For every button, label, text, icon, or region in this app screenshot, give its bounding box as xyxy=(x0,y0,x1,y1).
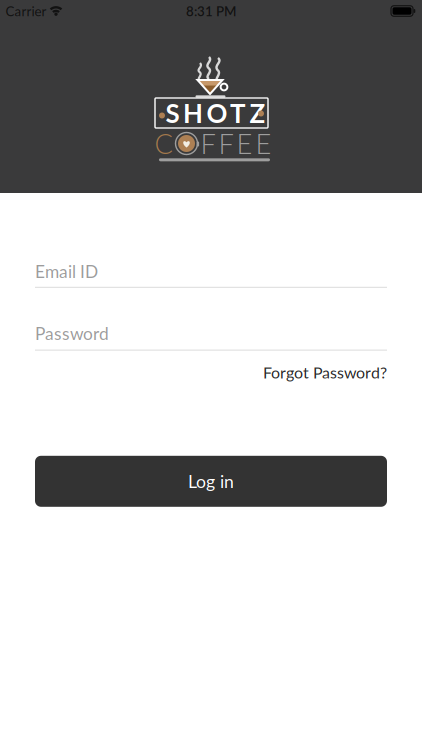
button[interactable]: Log in xyxy=(35,456,387,507)
button[interactable]: Forgot Password? xyxy=(263,363,387,382)
staticText: SHOTZ xyxy=(165,97,265,128)
staticText: Log in xyxy=(188,471,234,492)
button[interactable]: Email ID xyxy=(35,261,387,288)
staticText: FFEE xyxy=(200,127,271,160)
staticText: Email ID xyxy=(35,261,98,282)
staticText: Forgot Password? xyxy=(263,363,387,382)
staticText: 8:31 PM xyxy=(186,3,236,19)
staticText: Password xyxy=(35,323,109,344)
button[interactable]: Password xyxy=(35,323,387,351)
staticText: Carrier xyxy=(5,3,46,19)
staticText: C xyxy=(154,127,172,160)
